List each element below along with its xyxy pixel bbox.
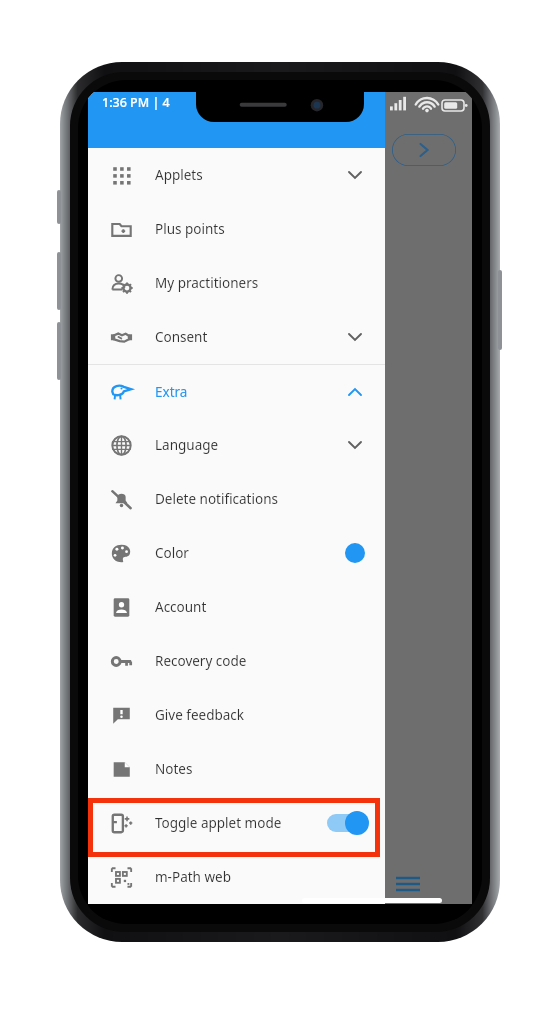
staticText: Recovery code xyxy=(155,652,247,670)
staticText: Plus points xyxy=(155,220,225,238)
staticText: Language xyxy=(155,436,219,454)
button[interactable]: Toggle applet mode xyxy=(88,796,385,850)
button[interactable]: Pick colour xyxy=(345,543,365,563)
button[interactable]: My practitioners xyxy=(88,256,385,310)
button[interactable]: Consent xyxy=(88,310,385,364)
staticText: Applets xyxy=(155,166,203,184)
staticText: Notes xyxy=(155,760,193,778)
button[interactable]: Plus points xyxy=(88,202,385,256)
staticText: Consent xyxy=(155,328,208,346)
staticText: Account xyxy=(155,598,207,616)
staticText: 1:36 PM | 4 xyxy=(102,94,170,111)
button[interactable]: Account xyxy=(88,580,385,634)
staticText: Delete notifications xyxy=(155,490,278,508)
staticText: My practitioners xyxy=(155,274,259,292)
button[interactable]: Applets xyxy=(88,148,385,202)
button[interactable]: Give feedback xyxy=(88,688,385,742)
button[interactable]: Next xyxy=(392,134,456,166)
button[interactable]: Extra xyxy=(88,365,385,418)
staticText: m-Path web xyxy=(155,868,231,886)
button[interactable]: Notes xyxy=(88,742,385,796)
staticText: Extra xyxy=(155,383,188,401)
button[interactable]: Delete notifications xyxy=(88,472,385,526)
button[interactable]: Color xyxy=(88,526,385,580)
button[interactable]: Menu xyxy=(396,876,420,892)
button[interactable]: Language xyxy=(88,418,385,472)
staticText: Toggle applet mode xyxy=(155,814,282,832)
button[interactable]: Recovery code xyxy=(88,634,385,688)
staticText: Give feedback xyxy=(155,706,245,724)
button[interactable]: m-Path web xyxy=(88,850,385,904)
staticText: Color xyxy=(155,544,189,562)
button[interactable]: Toggle applet mode xyxy=(327,811,369,835)
